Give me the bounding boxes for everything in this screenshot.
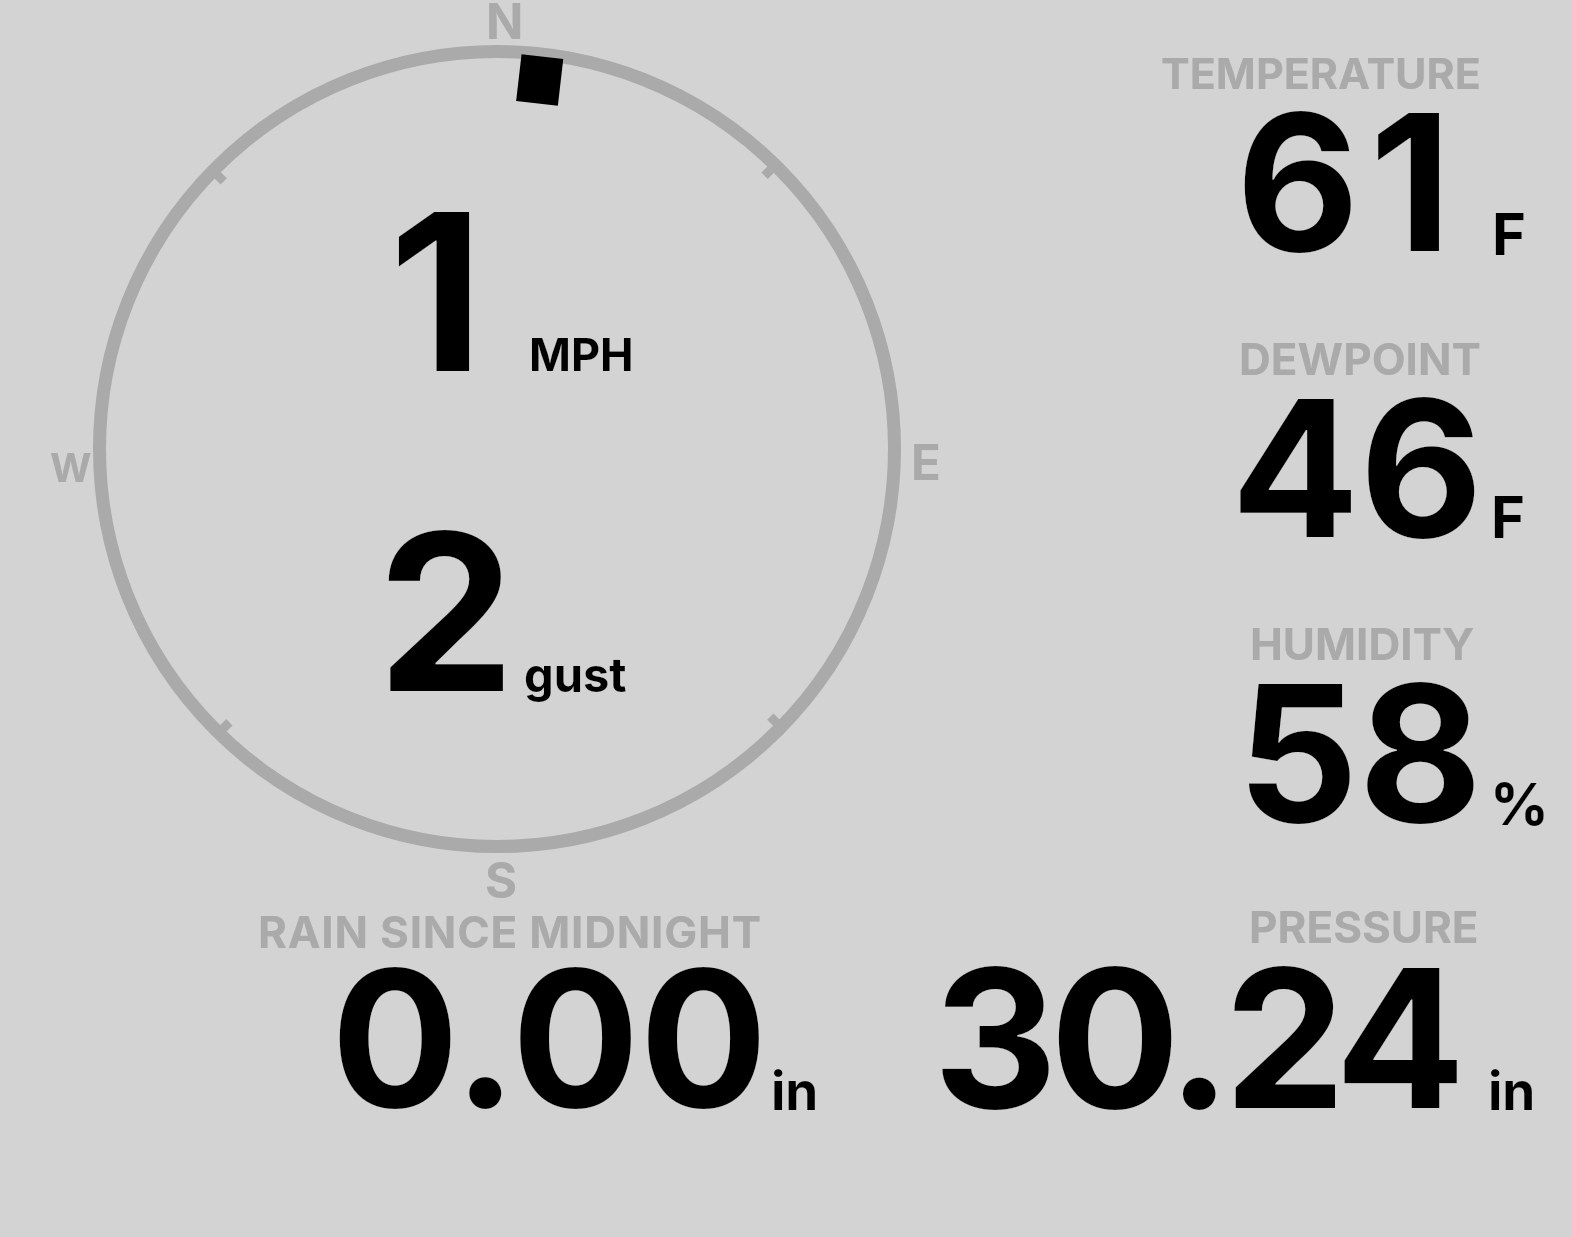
staticText: %	[1490, 769, 1549, 839]
staticText: 46	[1231, 353, 1483, 583]
staticText: in	[1488, 1059, 1536, 1123]
staticText: in	[771, 1059, 819, 1123]
button[interactable]: Humidity 58 percent	[1100, 605, 1571, 835]
staticText: 61	[1236, 67, 1462, 297]
staticText: TEMPERATURE	[1161, 47, 1481, 99]
button[interactable]: Temperature 61 degrees Fahrenheit	[1100, 40, 1571, 270]
staticText: MPH	[529, 327, 634, 381]
staticText: E	[911, 433, 941, 492]
button[interactable]: Wind 1 miles per hour, gusting 2, direct…	[95, 47, 900, 852]
staticText: F	[1492, 199, 1527, 269]
staticText: DEWPOINT	[1239, 332, 1481, 385]
button[interactable]: Dew point 46 degrees Fahrenheit	[1100, 320, 1571, 550]
staticText: N	[486, 0, 524, 51]
staticText: 2	[377, 479, 515, 744]
button[interactable]: Rain since midnight 0.00 inches	[240, 895, 840, 1125]
staticText: PRESSURE	[1249, 900, 1479, 953]
staticText: F	[1491, 482, 1526, 552]
staticText: 1	[389, 159, 484, 424]
staticText: S	[485, 851, 518, 910]
staticText: HUMIDITY	[1250, 617, 1475, 670]
button[interactable]: Pressure 30.24 inches	[880, 890, 1571, 1125]
staticText: RAIN SINCE MIDNIGHT	[258, 905, 762, 958]
staticText: 30.24	[933, 921, 1459, 1155]
staticText: 0.00	[331, 923, 768, 1153]
staticText: 58	[1237, 638, 1483, 868]
staticText: W	[50, 443, 92, 491]
staticText: gust	[524, 646, 627, 703]
